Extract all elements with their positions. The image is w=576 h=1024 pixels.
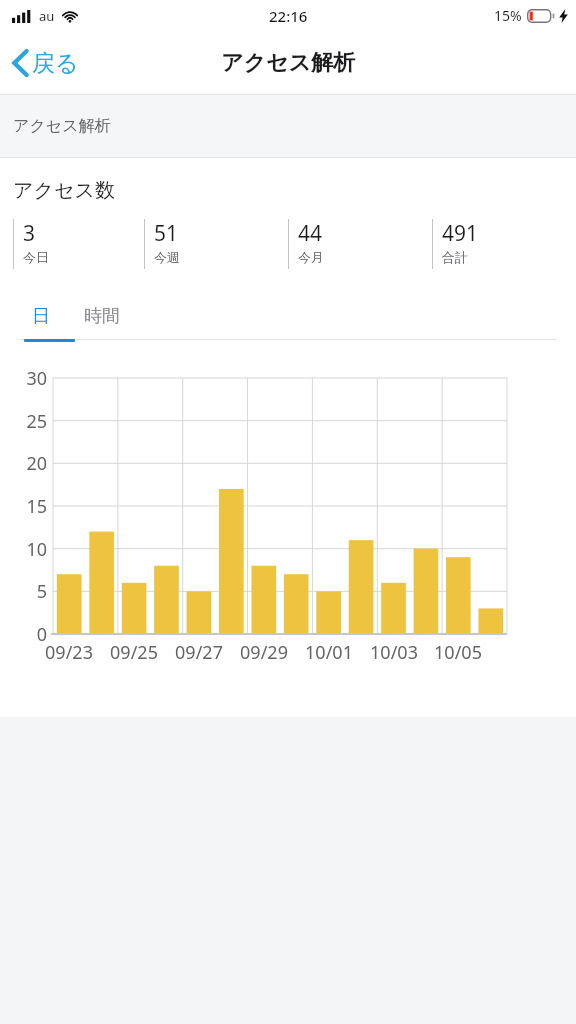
staticText: アクセス数 bbox=[13, 178, 115, 203]
staticText: 09/29 bbox=[229, 640, 299, 665]
staticText: 0 bbox=[2, 622, 47, 647]
staticText: 今日 bbox=[23, 249, 49, 265]
staticText: 15 bbox=[2, 494, 47, 519]
staticText: 20 bbox=[2, 451, 47, 476]
staticText: 22:16 bbox=[269, 6, 308, 26]
staticText: 10/01 bbox=[294, 640, 364, 665]
staticText: 15% bbox=[494, 6, 522, 25]
button[interactable]: 時間 bbox=[78, 300, 126, 333]
staticText: 25 bbox=[2, 409, 47, 434]
staticText: 今週 bbox=[154, 249, 180, 265]
button[interactable]: 日 bbox=[26, 300, 56, 333]
staticText: 戻る bbox=[32, 49, 79, 78]
staticText: 51 bbox=[154, 219, 179, 248]
staticText: 10/05 bbox=[423, 640, 493, 665]
staticText: 日 bbox=[32, 305, 50, 328]
staticText: 44 bbox=[298, 219, 323, 248]
staticText: 今月 bbox=[298, 249, 324, 265]
staticText: アクセス解析 bbox=[13, 116, 111, 136]
button[interactable]: 51 bbox=[144, 219, 288, 269]
staticText: 10 bbox=[2, 537, 47, 562]
staticText: 09/27 bbox=[164, 640, 234, 665]
button[interactable]: 3 bbox=[0, 219, 144, 269]
staticText: 時間 bbox=[84, 305, 120, 328]
button[interactable]: 44 bbox=[288, 219, 432, 269]
staticText: 09/25 bbox=[99, 640, 169, 665]
staticText: 5 bbox=[2, 579, 47, 604]
staticText: 09/23 bbox=[34, 640, 104, 665]
staticText: 3 bbox=[23, 219, 36, 248]
staticText: 合計 bbox=[442, 249, 468, 265]
staticText: 10/03 bbox=[359, 640, 429, 665]
staticText: 30 bbox=[2, 366, 47, 391]
staticText: アクセス解析 bbox=[221, 49, 356, 77]
button[interactable]: 戻る bbox=[6, 40, 85, 86]
staticText: 491 bbox=[442, 219, 479, 248]
button[interactable]: 491 bbox=[432, 219, 576, 269]
staticText: au bbox=[39, 7, 55, 25]
